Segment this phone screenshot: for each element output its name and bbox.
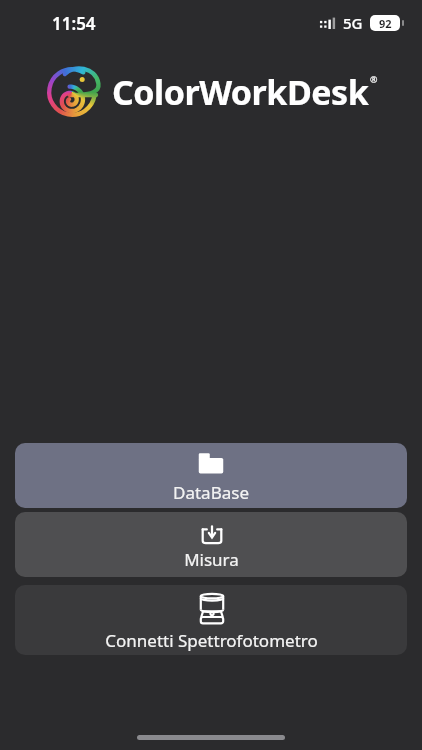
staticText: Misura: [184, 548, 239, 571]
button[interactable]: DataBase folder: [15, 443, 407, 508]
staticText: 5G: [343, 13, 363, 33]
staticText: Connetti Spettrofotometro: [105, 629, 318, 652]
button[interactable]: Connetti Spettrofotometro: [15, 585, 407, 655]
staticText: ColorWorkDesk: [112, 69, 369, 115]
button[interactable]: Misura measure: [15, 512, 407, 577]
staticText: ®: [370, 73, 378, 85]
other: Misura measure: [197, 518, 227, 548]
other: Connetti Spettrofotometro: [192, 589, 232, 629]
staticText: DataBase: [173, 481, 249, 504]
staticText: 92: [379, 16, 392, 31]
other: DataBase folder: [194, 447, 228, 481]
staticText: 11:54: [52, 12, 96, 35]
